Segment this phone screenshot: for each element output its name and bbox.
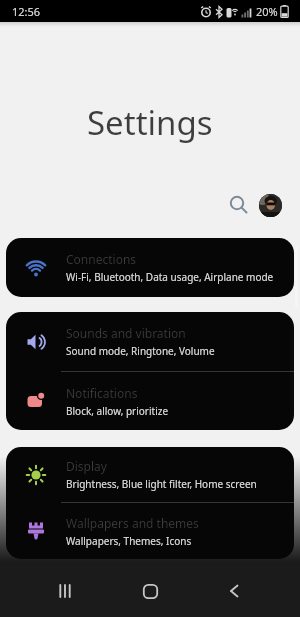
button[interactable] [215, 571, 255, 611]
button[interactable] [45, 571, 85, 611]
button[interactable] [226, 192, 252, 218]
button[interactable] [130, 571, 170, 611]
button[interactable] [259, 194, 282, 217]
button[interactable]: Wallpapers and themes [6, 503, 294, 559]
staticText: Connections [66, 251, 137, 267]
staticText: Notifications [66, 385, 138, 401]
staticText: Wi-Fi, Bluetooth, Data usage, Airplane m… [66, 270, 274, 284]
staticText: Display [66, 458, 107, 474]
button[interactable]: Sounds and vibration [6, 312, 294, 371]
staticText: Block, allow, prioritize [66, 404, 169, 418]
staticText: Wallpapers, Themes, Icons [66, 534, 192, 548]
staticText: 12:56 [12, 4, 41, 19]
staticText: Sound mode, Ringtone, Volume [66, 344, 215, 358]
button[interactable]: Connections [6, 238, 294, 297]
staticText: Wallpapers and themes [66, 515, 199, 531]
staticText: Sounds and vibration [66, 325, 186, 341]
staticText: Brightness, Blue light filter, Home scre… [66, 477, 257, 491]
staticText: 20% [256, 4, 278, 19]
button[interactable]: Display [6, 447, 294, 502]
staticText: Settings [87, 100, 213, 145]
button[interactable]: Notifications [6, 372, 294, 430]
